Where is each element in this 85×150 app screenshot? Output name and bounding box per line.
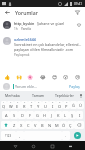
button[interactable]: 4 xyxy=(21,101,28,109)
button[interactable]: 😍 xyxy=(51,73,58,80)
staticText: 4 xyxy=(24,101,26,104)
button[interactable]: Shift xyxy=(1,121,11,129)
staticText: B xyxy=(41,123,44,128)
button[interactable]: ?123 xyxy=(1,131,16,140)
staticText: G xyxy=(36,113,39,118)
staticText: Yorum ekle... xyxy=(15,84,67,89)
button[interactable]: Home xyxy=(29,142,37,150)
staticText: C xyxy=(27,123,30,128)
staticText: I xyxy=(52,104,54,109)
staticText: Ö xyxy=(62,123,66,128)
button[interactable]: 😮 xyxy=(62,73,69,80)
staticText: Paylaş xyxy=(69,84,80,89)
staticText: 👍 xyxy=(4,74,11,80)
button[interactable]: http_byskin xyxy=(0,18,85,34)
button[interactable]: L xyxy=(62,111,69,119)
button[interactable]: 5 xyxy=(28,101,35,109)
staticText: E xyxy=(16,104,19,109)
staticText: Yanıtla xyxy=(21,27,31,31)
button[interactable]: Merhaba xyxy=(0,91,25,100)
staticText: Ğ xyxy=(72,103,75,108)
button[interactable]: Send xyxy=(74,132,81,139)
button[interactable]: Ç xyxy=(67,121,74,129)
button[interactable]: 3 xyxy=(14,101,21,109)
button[interactable]: ozlemle6644 xyxy=(0,34,85,60)
button[interactable]: H xyxy=(41,111,48,119)
button[interactable]: C xyxy=(25,121,32,129)
button[interactable]: F xyxy=(26,111,34,119)
button[interactable]: , xyxy=(16,131,24,140)
staticText: Q xyxy=(2,104,6,109)
staticText: R xyxy=(23,104,26,109)
button[interactable]: A xyxy=(2,111,10,119)
staticText: ozlemle6644 xyxy=(14,37,36,42)
staticText: J xyxy=(51,113,53,118)
staticText: Ü xyxy=(79,103,82,108)
staticText: L xyxy=(64,113,67,118)
button[interactable]: V xyxy=(32,121,39,129)
button[interactable]: Tamam xyxy=(25,91,51,100)
button[interactable]: Paylaş xyxy=(67,83,82,90)
button[interactable]: Recents xyxy=(48,142,56,150)
staticText: paylaşan ciltlen filmealbnizdir .com xyxy=(14,47,74,52)
staticText: H xyxy=(43,113,46,118)
button[interactable]: 6 xyxy=(35,101,42,109)
button[interactable]: G xyxy=(34,111,41,119)
button[interactable]: 😂 xyxy=(39,73,46,80)
staticText: Ş xyxy=(71,113,74,118)
staticText: N xyxy=(48,123,52,128)
staticText: 😢 xyxy=(75,74,81,80)
button[interactable]: Filter xyxy=(73,8,82,17)
button[interactable]: Ş xyxy=(69,111,76,119)
button[interactable]: Teşekkürler xyxy=(51,91,77,100)
button[interactable]: J xyxy=(48,111,55,119)
button[interactable]: Backspace xyxy=(74,121,84,129)
staticText: 🙌 xyxy=(16,74,23,80)
button[interactable]: 8 xyxy=(49,101,56,109)
button[interactable]: Back xyxy=(3,8,12,17)
button[interactable]: Ö xyxy=(60,121,67,129)
button[interactable]: 7 xyxy=(42,101,49,109)
button[interactable]: Voice input xyxy=(77,91,85,100)
button[interactable]: N xyxy=(46,121,53,129)
button[interactable]: Back xyxy=(11,142,19,150)
staticText: Yorumlar xyxy=(15,9,38,16)
button[interactable]: 2 xyxy=(7,101,14,109)
button[interactable]: 🙌 xyxy=(16,73,23,80)
button[interactable]: B xyxy=(39,121,46,129)
staticText: M xyxy=(55,123,59,128)
staticText: Z xyxy=(13,123,16,128)
staticText: P xyxy=(65,104,68,109)
staticText: 😍 xyxy=(52,74,58,80)
button[interactable]: I xyxy=(76,111,83,119)
button[interactable]: M xyxy=(53,121,60,129)
button[interactable]: 1 xyxy=(1,101,7,109)
button[interactable]: . xyxy=(62,131,70,140)
staticText: Merhaba xyxy=(5,93,20,98)
staticText: ?123 xyxy=(5,134,12,138)
staticText: K xyxy=(57,113,60,118)
button[interactable]: Z xyxy=(11,121,18,129)
button[interactable]: S xyxy=(10,111,18,119)
button[interactable]: Like xyxy=(75,21,82,28)
button[interactable]: 👍 xyxy=(4,73,11,80)
button[interactable]: 🌸 xyxy=(27,73,34,80)
button[interactable]: 9 xyxy=(56,101,63,109)
button[interactable]: 0 xyxy=(63,101,70,109)
button[interactable]: Ğ xyxy=(70,101,77,109)
button[interactable]: X xyxy=(18,121,25,129)
staticText: O xyxy=(58,104,62,109)
staticText: 6 xyxy=(38,101,40,104)
staticText: D xyxy=(21,113,24,118)
button[interactable]: K xyxy=(55,111,62,119)
staticText: U xyxy=(44,104,47,109)
button[interactable]: 😢 xyxy=(74,73,81,80)
staticText: Sonrakinet en çok bakandırlar, ellerinde… xyxy=(14,42,82,47)
staticText: 😮 xyxy=(63,74,69,80)
staticText: 7 xyxy=(45,101,47,104)
button[interactable]: Hide keyboard xyxy=(66,142,74,150)
staticText: A xyxy=(5,113,8,118)
button[interactable]: Ü xyxy=(77,101,84,109)
button[interactable]: D xyxy=(18,111,26,119)
